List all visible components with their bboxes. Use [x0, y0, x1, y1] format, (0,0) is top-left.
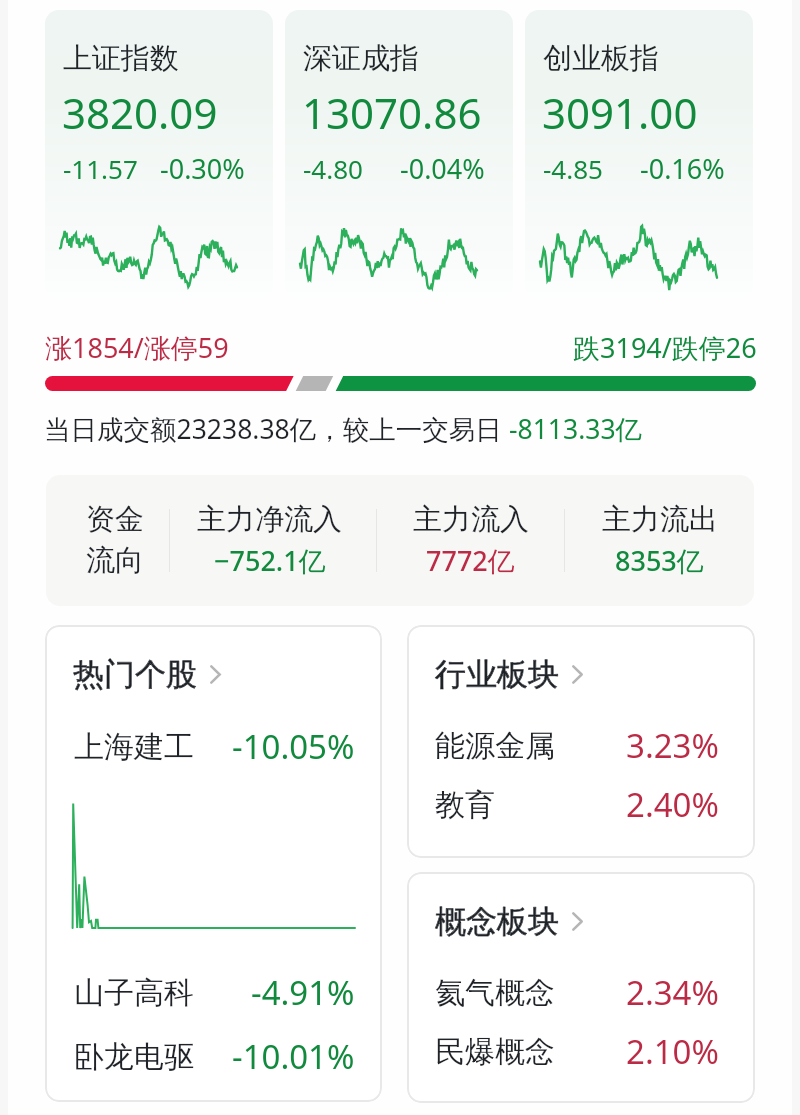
staticText: 创业板指 [543, 40, 659, 77]
staticText: -10.01% [232, 1034, 355, 1079]
staticText: 2.40% [626, 782, 719, 827]
staticText: 资金 [86, 501, 144, 538]
staticText: 3.23% [626, 723, 719, 768]
button[interactable]: 能源金属 [435, 723, 719, 768]
button[interactable]: 创业板指 [525, 10, 753, 298]
button[interactable]: 跌3194/跌停26 [573, 329, 757, 366]
button[interactable]: 上海建工 [74, 724, 355, 769]
staticText: 主力净流入 [197, 501, 342, 538]
staticText: 深证成指 [303, 40, 419, 77]
button[interactable]: 涨1854/涨停59 [45, 329, 229, 366]
button[interactable]: 上证指数 [45, 10, 273, 298]
staticText: 山子高科 [74, 974, 194, 1012]
staticText: -8113.33亿 [509, 411, 643, 447]
button[interactable]: 行业板块 [407, 625, 755, 858]
staticText: 3820.09 [62, 84, 218, 141]
other: 涨跌比例 [45, 376, 756, 391]
staticText: 上海建工 [74, 728, 194, 766]
staticText: 能源金属 [435, 727, 555, 765]
staticText: 卧龙电驱 [74, 1038, 194, 1076]
staticText: 涨1854/涨停59 [45, 329, 229, 366]
staticText: 上证指数 [63, 40, 179, 77]
staticText: 概念板块 [435, 902, 559, 941]
button[interactable]: 热门个股 [73, 655, 221, 694]
staticText: 2.34% [626, 970, 719, 1015]
staticText: 氦气概念 [435, 974, 555, 1012]
button[interactable]: 教育 [435, 782, 719, 827]
staticText: 3091.00 [542, 84, 698, 141]
button[interactable]: 行业板块 [435, 655, 583, 694]
staticText: -0.04% [400, 150, 485, 187]
staticText: 2.10% [626, 1029, 719, 1074]
staticText: 热门个股 [73, 655, 197, 694]
staticText: 概念板块 [435, 902, 559, 941]
staticText: 当日成交额23238.38亿，较上一交易日 [44, 411, 509, 447]
staticText: -4.91% [251, 970, 355, 1015]
staticText: 行业板块 [435, 655, 559, 694]
staticText: -4.80 [303, 151, 363, 186]
staticText: 跌3194/跌停26 [573, 329, 757, 366]
button[interactable]: 资金 [46, 475, 754, 606]
staticText: 主力流出 [602, 501, 718, 538]
staticText: 热门个股 [73, 655, 197, 694]
button[interactable]: 概念板块 [435, 902, 583, 941]
staticText: 8353亿 [615, 542, 704, 579]
staticText: 主力流入 [413, 501, 529, 538]
staticText: −752.1亿 [214, 542, 326, 579]
button[interactable]: 民爆概念 [435, 1029, 719, 1074]
staticText: 13070.86 [302, 84, 482, 141]
button[interactable]: 深证成指 [285, 10, 513, 298]
staticText: 行业板块 [435, 655, 559, 694]
staticText: 流向 [86, 542, 144, 579]
staticText: -11.57 [63, 151, 138, 186]
button[interactable]: 概念板块 [407, 872, 755, 1103]
staticText: 7772亿 [426, 542, 515, 579]
staticText: -0.30% [160, 150, 245, 187]
staticText: -0.16% [640, 150, 725, 187]
staticText: 教育 [435, 786, 495, 824]
staticText: 民爆概念 [435, 1033, 555, 1071]
staticText: -4.85 [543, 151, 603, 186]
staticText: -10.05% [232, 724, 355, 769]
button[interactable]: 热门个股 [45, 625, 382, 1102]
button[interactable]: 山子高科 [74, 970, 355, 1015]
button[interactable]: 氦气概念 [435, 970, 719, 1015]
button[interactable]: 卧龙电驱 [74, 1034, 355, 1079]
